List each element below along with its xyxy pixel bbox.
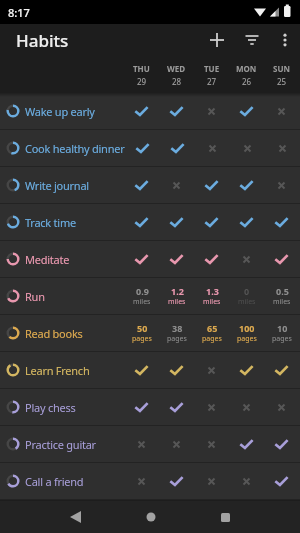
button[interactable]: Track time bbox=[0, 204, 300, 241]
button[interactable] bbox=[264, 241, 299, 277]
staticText: Track time bbox=[25, 215, 76, 230]
button[interactable]: 0 bbox=[229, 278, 264, 314]
staticText: pages bbox=[167, 334, 187, 344]
staticText: 25 bbox=[277, 76, 287, 87]
button[interactable] bbox=[264, 389, 299, 425]
button[interactable]: Cook healthy dinner bbox=[0, 130, 300, 167]
staticText: 8:17 bbox=[8, 5, 30, 20]
button[interactable] bbox=[159, 426, 194, 462]
staticText: WED bbox=[167, 63, 186, 74]
staticText: pages bbox=[132, 334, 152, 344]
button[interactable] bbox=[264, 463, 299, 499]
button[interactable] bbox=[265, 130, 300, 166]
button[interactable] bbox=[229, 167, 264, 203]
staticText: pages bbox=[237, 334, 257, 344]
button[interactable] bbox=[124, 167, 159, 203]
staticText: 38 bbox=[172, 322, 183, 334]
button[interactable] bbox=[124, 352, 159, 388]
button[interactable]: Practice guitar bbox=[0, 426, 300, 463]
staticText: Meditate bbox=[25, 252, 70, 267]
button[interactable]: 50 bbox=[124, 315, 159, 351]
button[interactable] bbox=[229, 93, 264, 129]
staticText: 0 bbox=[244, 285, 250, 297]
staticText: 27 bbox=[207, 76, 217, 87]
button[interactable]: 0.9 bbox=[124, 278, 159, 314]
button[interactable] bbox=[200, 24, 234, 56]
button[interactable] bbox=[159, 241, 194, 277]
button[interactable] bbox=[159, 463, 194, 499]
staticText: miles bbox=[168, 297, 186, 307]
staticText: pages bbox=[272, 334, 292, 344]
button[interactable]: Run bbox=[0, 278, 300, 315]
button[interactable] bbox=[264, 352, 299, 388]
button[interactable] bbox=[160, 130, 195, 166]
staticText: 65 bbox=[207, 322, 218, 334]
button[interactable] bbox=[194, 463, 229, 499]
staticText: 10 bbox=[277, 322, 288, 334]
button[interactable]: Write journal bbox=[0, 167, 300, 204]
button[interactable] bbox=[229, 426, 264, 462]
button[interactable] bbox=[229, 352, 264, 388]
button[interactable] bbox=[270, 24, 300, 56]
button[interactable] bbox=[194, 204, 229, 240]
button[interactable] bbox=[264, 93, 299, 129]
button[interactable] bbox=[264, 167, 299, 203]
button[interactable] bbox=[159, 389, 194, 425]
button[interactable]: Play chess bbox=[0, 389, 300, 426]
button[interactable] bbox=[234, 24, 270, 56]
button[interactable] bbox=[194, 389, 229, 425]
staticText: Call a friend bbox=[25, 474, 84, 489]
button[interactable] bbox=[229, 241, 264, 277]
staticText: 50 bbox=[137, 322, 148, 334]
button[interactable]: 65 bbox=[194, 315, 229, 351]
staticText: Wake up early bbox=[25, 104, 95, 119]
staticText: Read books bbox=[25, 326, 83, 341]
button[interactable]: 0.5 bbox=[264, 278, 299, 314]
button[interactable] bbox=[229, 204, 264, 240]
staticText: miles bbox=[203, 297, 221, 307]
button[interactable] bbox=[195, 130, 230, 166]
button[interactable] bbox=[194, 93, 229, 129]
button[interactable]: Meditate bbox=[0, 241, 300, 278]
button[interactable] bbox=[229, 463, 264, 499]
button[interactable] bbox=[264, 204, 299, 240]
staticText: THU bbox=[133, 63, 150, 74]
button[interactable] bbox=[230, 130, 265, 166]
button[interactable]: 10 bbox=[264, 315, 299, 351]
button[interactable] bbox=[159, 167, 194, 203]
button[interactable]: Wake up early bbox=[0, 93, 300, 130]
button[interactable] bbox=[124, 389, 159, 425]
button[interactable]: 1.2 bbox=[159, 278, 194, 314]
staticText: 26 bbox=[242, 76, 252, 87]
button[interactable] bbox=[125, 130, 160, 166]
button[interactable] bbox=[264, 426, 299, 462]
button[interactable]: 100 bbox=[229, 315, 264, 351]
button[interactable]: 38 bbox=[159, 315, 194, 351]
button[interactable] bbox=[194, 167, 229, 203]
staticText: Practice guitar bbox=[25, 437, 96, 452]
button[interactable]: 1.3 bbox=[194, 278, 229, 314]
button[interactable] bbox=[194, 241, 229, 277]
button[interactable]: Call a friend bbox=[0, 463, 300, 500]
button[interactable] bbox=[124, 463, 159, 499]
staticText: Run bbox=[25, 289, 45, 304]
staticText: MON bbox=[236, 63, 257, 74]
button[interactable] bbox=[159, 352, 194, 388]
button[interactable] bbox=[124, 241, 159, 277]
button[interactable]: Learn French bbox=[0, 352, 300, 389]
button[interactable] bbox=[124, 426, 159, 462]
staticText: Play chess bbox=[25, 400, 76, 415]
button[interactable] bbox=[194, 426, 229, 462]
button[interactable] bbox=[229, 389, 264, 425]
button[interactable] bbox=[194, 352, 229, 388]
button[interactable] bbox=[159, 93, 194, 129]
button[interactable] bbox=[124, 204, 159, 240]
button[interactable] bbox=[188, 501, 263, 533]
staticText: 0.5 bbox=[276, 285, 289, 297]
button[interactable] bbox=[38, 501, 113, 533]
button[interactable] bbox=[124, 93, 159, 129]
button[interactable]: Read books bbox=[0, 315, 300, 352]
button[interactable] bbox=[113, 501, 188, 533]
staticText: Learn French bbox=[25, 363, 90, 378]
button[interactable] bbox=[159, 204, 194, 240]
